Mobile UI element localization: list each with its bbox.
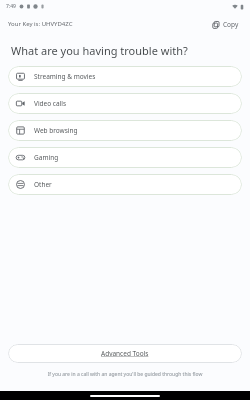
staticText: Web browsing xyxy=(34,126,78,135)
staticText: What are you having trouble with? xyxy=(11,43,188,58)
button[interactable]: Copy xyxy=(209,18,242,31)
button[interactable]: Advanced Tools xyxy=(8,344,242,363)
staticText: Copy xyxy=(223,20,239,29)
staticText: Gaming xyxy=(34,153,59,162)
staticText: Other xyxy=(34,180,52,189)
button[interactable]: Other xyxy=(8,174,242,195)
staticText: Video calls xyxy=(34,99,67,108)
button[interactable]: Streaming & movies xyxy=(8,66,242,87)
staticText: If you are in a call with an agent you'l… xyxy=(10,371,240,378)
staticText: Streaming & movies xyxy=(34,72,96,81)
button[interactable]: Video calls xyxy=(8,93,242,114)
staticText: 7:49 xyxy=(6,3,16,10)
staticText: Advanced Tools xyxy=(101,349,149,358)
staticText: Your Key is: UHVYD4ZC xyxy=(8,20,73,28)
button[interactable]: Web browsing xyxy=(8,120,242,141)
button[interactable]: Gaming xyxy=(8,147,242,168)
